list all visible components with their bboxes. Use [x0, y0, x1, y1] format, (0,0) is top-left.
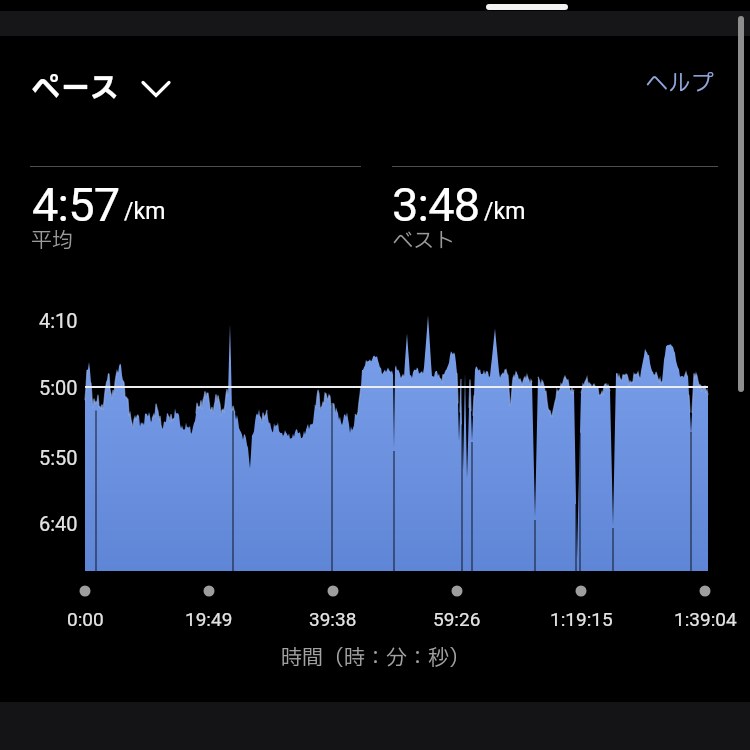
staticText: ペース — [31, 67, 120, 110]
staticText: ヘルプ — [645, 67, 714, 101]
staticText: 時間（時：分：秒） — [281, 643, 470, 674]
staticText: /km — [124, 198, 166, 225]
staticText: 6:40 — [39, 512, 78, 535]
staticText: 0:00 — [67, 608, 104, 630]
staticText: 19:49 — [185, 608, 233, 630]
staticText: 59:26 — [433, 608, 481, 630]
staticText: 4:10 — [39, 309, 78, 332]
staticText: 5:50 — [39, 446, 78, 469]
button[interactable]: ヘルプ — [635, 64, 735, 106]
staticText: 1:19:15 — [550, 608, 613, 630]
staticText: 平均 — [31, 226, 73, 257]
staticText: 3:48 — [392, 177, 480, 232]
staticText: ベスト — [392, 226, 455, 257]
staticText: 4:57 — [32, 177, 120, 232]
button[interactable]: ペース — [18, 67, 170, 110]
staticText: /km — [484, 198, 526, 225]
staticText: 5:00 — [39, 376, 78, 399]
staticText: 1:39:04 — [674, 608, 737, 630]
staticText: 39:38 — [309, 608, 357, 630]
